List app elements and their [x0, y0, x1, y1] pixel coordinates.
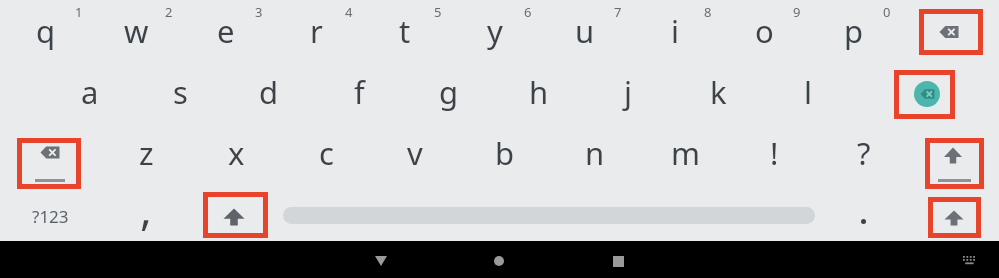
- button[interactable]: [877, 63, 977, 124]
- staticText: 2: [165, 3, 173, 21]
- button[interactable]: [363, 243, 399, 278]
- button[interactable]: [818, 191, 908, 252]
- staticText: m: [671, 132, 700, 174]
- button[interactable]: ,: [101, 177, 191, 238]
- staticText: n: [585, 132, 605, 174]
- button[interactable]: l: [763, 61, 853, 122]
- button[interactable]: z: [101, 122, 191, 183]
- button[interactable]: f: [314, 61, 404, 122]
- staticText: q: [36, 10, 56, 52]
- staticText: p: [844, 10, 864, 52]
- staticText: d: [259, 71, 279, 113]
- button[interactable]: x: [191, 122, 281, 183]
- staticText: 6: [524, 3, 532, 21]
- staticText: 9: [793, 3, 801, 21]
- staticText: a: [81, 71, 99, 113]
- button[interactable]: w: [91, 0, 181, 61]
- button[interactable]: t: [360, 0, 450, 61]
- staticText: ?123: [32, 205, 69, 228]
- staticText: c: [319, 132, 334, 174]
- button[interactable]: e: [181, 0, 271, 61]
- staticText: l: [804, 71, 812, 113]
- button[interactable]: g: [404, 61, 494, 122]
- staticText: e: [217, 10, 235, 52]
- button[interactable]: ?123: [0, 186, 100, 247]
- staticText: k: [710, 71, 727, 113]
- staticText: 4: [345, 3, 353, 21]
- button[interactable]: h: [494, 61, 584, 122]
- button[interactable]: b: [460, 122, 550, 183]
- button[interactable]: y: [450, 0, 540, 61]
- staticText: 7: [614, 3, 622, 21]
- staticText: o: [755, 10, 774, 52]
- button[interactable]: k: [673, 61, 763, 122]
- button[interactable]: [481, 243, 517, 278]
- staticText: f: [354, 71, 365, 113]
- button[interactable]: !: [729, 122, 819, 183]
- button[interactable]: [955, 247, 983, 273]
- button[interactable]: d: [224, 61, 314, 122]
- button[interactable]: m: [640, 122, 730, 183]
- staticText: y: [487, 10, 503, 52]
- staticText: r: [310, 10, 323, 52]
- staticText: 8: [704, 3, 712, 21]
- button[interactable]: i: [630, 0, 720, 61]
- staticText: 5: [434, 3, 442, 21]
- button[interactable]: c: [281, 122, 371, 183]
- button[interactable]: a: [45, 61, 135, 122]
- staticText: ,: [140, 178, 152, 238]
- button[interactable]: r: [271, 0, 361, 61]
- staticText: h: [529, 71, 549, 113]
- staticText: z: [139, 132, 154, 174]
- staticText: ?: [857, 132, 871, 174]
- button[interactable]: ?: [819, 122, 909, 183]
- staticText: g: [439, 71, 459, 113]
- staticText: b: [495, 132, 515, 174]
- staticText: t: [399, 10, 411, 52]
- button[interactable]: [908, 187, 999, 248]
- staticText: w: [124, 10, 149, 52]
- button[interactable]: s: [135, 61, 225, 122]
- button[interactable]: q: [1, 0, 91, 61]
- button[interactable]: j: [583, 61, 673, 122]
- button[interactable]: [189, 186, 279, 247]
- button[interactable]: [899, 1, 999, 62]
- button[interactable]: o: [719, 0, 809, 61]
- staticText: 0: [883, 3, 891, 21]
- button[interactable]: [907, 125, 999, 186]
- staticText: v: [407, 132, 423, 174]
- staticText: u: [575, 10, 595, 52]
- staticText: i: [671, 10, 679, 52]
- staticText: s: [173, 71, 188, 113]
- staticText: x: [228, 132, 245, 174]
- button[interactable]: p: [809, 0, 899, 61]
- button[interactable]: u: [540, 0, 630, 61]
- button[interactable]: [600, 243, 636, 278]
- staticText: j: [624, 71, 632, 113]
- button[interactable]: [0, 125, 100, 186]
- staticText: 1: [75, 3, 83, 21]
- button[interactable]: v: [370, 122, 460, 183]
- button[interactable]: n: [550, 122, 640, 183]
- staticText: 3: [255, 3, 263, 21]
- staticText: !: [770, 132, 779, 174]
